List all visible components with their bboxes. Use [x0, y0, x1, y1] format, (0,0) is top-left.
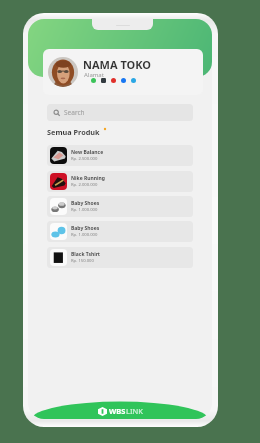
staticText: Baby Shoes — [71, 225, 100, 232]
button[interactable]: WhatsApp — [88, 76, 98, 85]
staticText: Alamat — [84, 71, 104, 79]
button[interactable]: Nike Running — [47, 171, 193, 192]
staticText: Semua Produk — [47, 127, 100, 137]
staticText: Rp. 2.000.000 — [71, 182, 98, 188]
button[interactable]: YouTube — [108, 76, 118, 85]
staticText: Rp. 2.500.000 — [71, 156, 98, 162]
button[interactable]: Black Tshirt — [47, 247, 193, 268]
staticText: Baby Shoes — [71, 200, 100, 207]
button[interactable]: NAMA TOKO — [43, 49, 203, 95]
button[interactable]: TikTok — [98, 76, 108, 85]
staticText: Nike Running — [71, 175, 105, 182]
button[interactable]: Search — [47, 104, 193, 121]
staticText: LINK — [126, 406, 143, 416]
button[interactable]: New Balance — [47, 145, 193, 166]
staticText: Rp. 1.000.000 — [71, 207, 98, 213]
button[interactable]: Twitter — [128, 76, 138, 85]
staticText: Search — [64, 108, 85, 117]
staticText: Rp. 1.000.000 — [71, 232, 98, 238]
staticText: New Balance — [71, 149, 104, 156]
button[interactable]: Baby Shoes — [47, 221, 193, 242]
button[interactable]: Baby Shoes — [47, 196, 193, 217]
button[interactable]: WBS — [98, 406, 143, 416]
button[interactable]: Facebook — [118, 76, 128, 85]
staticText: Black Tshirt — [71, 251, 101, 258]
staticText: WBS — [109, 406, 126, 416]
staticText: Rp. 150.000 — [71, 258, 94, 264]
staticText: NAMA TOKO — [83, 57, 152, 72]
